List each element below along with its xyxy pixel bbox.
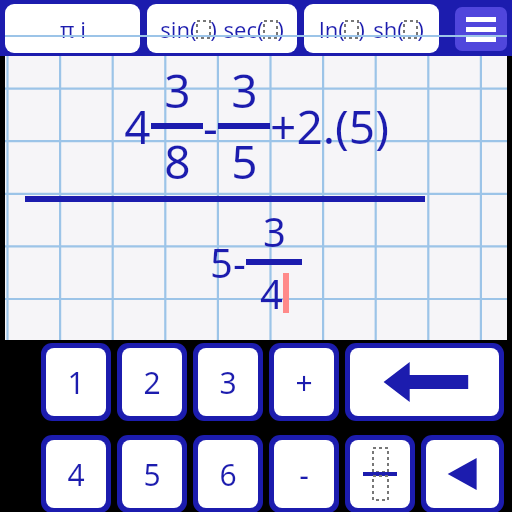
- button[interactable]: Move left: [426, 440, 499, 508]
- staticText: -: [233, 235, 246, 289]
- button[interactable]: +: [274, 348, 334, 416]
- staticText: 5: [143, 454, 161, 495]
- staticText: +2.(5): [270, 95, 389, 158]
- staticText: 6: [219, 454, 237, 495]
- staticText: 1: [67, 362, 85, 403]
- staticText: 3: [164, 59, 191, 122]
- button[interactable]: Backspace: [350, 348, 499, 416]
- staticText: 5: [210, 235, 233, 289]
- button[interactable]: Menu: [455, 7, 507, 51]
- button[interactable]: Fraction: [350, 440, 410, 508]
- staticText: 4: [260, 266, 283, 320]
- staticText: ): [210, 14, 217, 44]
- button[interactable]: 2: [122, 348, 182, 416]
- button[interactable]: 1: [46, 348, 106, 416]
- staticText: +: [295, 362, 313, 403]
- button[interactable]: 3: [198, 348, 258, 416]
- staticText: -: [299, 454, 309, 495]
- button[interactable]: 6: [198, 440, 258, 508]
- staticText: ln(: [319, 14, 345, 44]
- staticText: 8: [164, 130, 191, 193]
- staticText: 2: [143, 362, 161, 403]
- button[interactable]: -: [274, 440, 334, 508]
- staticText: 4: [67, 454, 85, 495]
- staticText: ): [358, 14, 365, 44]
- staticText: 4: [124, 95, 151, 158]
- staticText: 3: [219, 362, 237, 403]
- button[interactable]: ln(: [304, 4, 439, 53]
- button[interactable]: π i: [5, 4, 140, 53]
- staticText: sec(: [223, 14, 264, 44]
- button[interactable]: 5: [122, 440, 182, 508]
- staticText: -: [203, 95, 218, 158]
- staticText: 3: [263, 204, 286, 258]
- staticText: 3: [231, 59, 258, 122]
- staticText: π i: [60, 14, 86, 44]
- staticText: sin(: [160, 14, 197, 44]
- staticText: 5: [231, 130, 258, 193]
- button[interactable]: sin(: [147, 4, 297, 53]
- staticText: ): [277, 14, 284, 44]
- staticText: sh(: [373, 14, 404, 44]
- button[interactable]: 4: [46, 440, 106, 508]
- staticText: ): [417, 14, 424, 44]
